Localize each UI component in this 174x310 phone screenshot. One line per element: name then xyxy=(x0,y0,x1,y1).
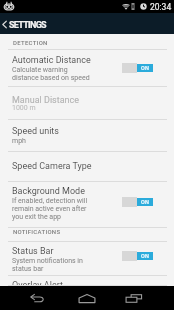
staticText: remain active even after xyxy=(12,205,87,213)
staticText: NOTIFICATIONS xyxy=(13,228,61,235)
button[interactable]: Speed units xyxy=(0,120,174,152)
staticText: If enabled, detection will xyxy=(12,197,88,205)
staticText: 1000 m xyxy=(12,104,36,112)
button[interactable]: Automatic Distance xyxy=(0,50,174,87)
staticText: Speed units xyxy=(12,126,59,137)
staticText: Status Bar xyxy=(12,246,54,257)
staticText: ON xyxy=(141,199,150,205)
staticText: Automatic Distance xyxy=(12,55,91,66)
button[interactable]: Speed Camera Type xyxy=(0,152,174,182)
button[interactable]: Status Bar xyxy=(0,242,174,276)
staticText: Background Mode xyxy=(12,186,85,197)
button[interactable]: ON xyxy=(122,251,153,261)
button[interactable]: Manual Distance xyxy=(0,87,174,120)
button[interactable]: Background Mode xyxy=(0,182,174,228)
staticText: you exit the app xyxy=(12,213,62,221)
staticText: DETECTION xyxy=(13,39,48,46)
button[interactable]: Back xyxy=(29,291,44,306)
staticText: Overlay Alert xyxy=(12,280,63,290)
staticText: ON xyxy=(141,253,150,259)
staticText: Manual Distance xyxy=(12,95,80,106)
staticText: Calculate warning xyxy=(12,66,68,74)
button[interactable]: Home xyxy=(77,288,97,308)
staticText: System notifications in xyxy=(12,257,83,265)
staticText: Speed Camera Type xyxy=(12,161,92,172)
staticText: distance based on speed xyxy=(12,74,90,82)
button[interactable]: Overlay Alert xyxy=(0,276,174,286)
staticText: ON xyxy=(141,65,150,71)
button[interactable]: Recent apps xyxy=(125,289,143,307)
button[interactable]: SETTINGS xyxy=(0,13,174,34)
button[interactable]: ON xyxy=(122,63,153,73)
button[interactable]: ON xyxy=(122,197,153,207)
staticText: status bar xyxy=(12,265,44,273)
staticText: SETTINGS xyxy=(9,20,46,31)
staticText: mph xyxy=(12,137,26,145)
staticText: 20:34 xyxy=(150,2,172,12)
